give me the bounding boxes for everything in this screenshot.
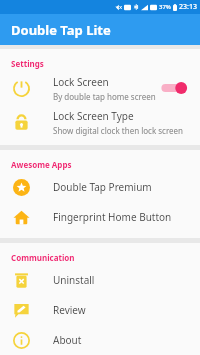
staticText: Uninstall: [53, 273, 95, 287]
staticText: 23:13: [179, 2, 197, 12]
button[interactable]: Review: [0, 295, 200, 325]
staticText: 37%: [159, 3, 171, 11]
staticText: Double Tap Premium: [53, 180, 152, 194]
staticText: Double Tap Lite: [11, 21, 111, 39]
staticText: Review: [53, 303, 86, 317]
staticText: About: [53, 333, 82, 347]
button[interactable]: About: [0, 325, 200, 355]
button[interactable]: Lock Screen toggle: [159, 79, 189, 97]
button[interactable]: Uninstall: [0, 265, 200, 295]
button[interactable]: Double Tap Premium: [0, 172, 200, 202]
staticText: Settings: [11, 58, 44, 69]
button[interactable]: Lock Screen: [0, 71, 200, 105]
staticText: By double tap home screen: [53, 91, 156, 102]
staticText: Lock Screen Type: [53, 109, 134, 123]
button[interactable]: Fingerprint Home Button: [0, 202, 200, 232]
staticText: Awesome Apps: [11, 159, 72, 170]
staticText: Fingerprint Home Button: [53, 210, 172, 224]
button[interactable]: Lock Screen Type: [0, 105, 200, 139]
staticText: Show digital clock then lock screen: [53, 125, 184, 136]
staticText: Lock Screen: [53, 75, 109, 89]
staticText: Communication: [11, 252, 75, 263]
